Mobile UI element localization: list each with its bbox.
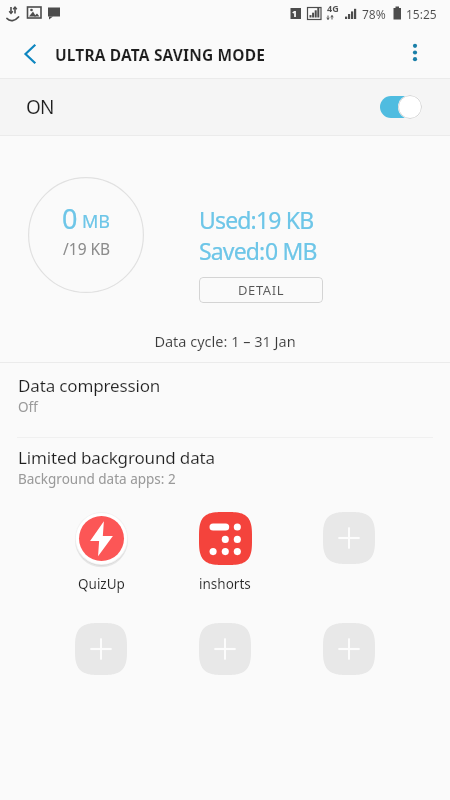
staticText: /19 KB: [63, 238, 111, 259]
staticText: MB: [82, 209, 111, 234]
staticText: 0 MB: [265, 235, 317, 266]
staticText: Off: [18, 398, 38, 416]
button[interactable]: DETAIL: [199, 277, 323, 303]
staticText: 4G: [327, 2, 339, 14]
button[interactable]: ON: [0, 79, 450, 135]
button[interactable]: Add app: [287, 623, 411, 703]
staticText: 15:25: [406, 6, 437, 22]
button[interactable]: More options: [398, 37, 432, 71]
staticText: Limited background data: [18, 446, 215, 469]
staticText: 78%: [362, 6, 386, 22]
button[interactable]: Add app: [163, 623, 287, 703]
staticText: 19 KB: [256, 204, 314, 235]
button[interactable]: Add app: [287, 512, 411, 592]
staticText: Data cycle: 1 – 31 Jan: [0, 331, 450, 351]
staticText: DETAIL: [238, 281, 285, 299]
button[interactable]: Navigate up: [12, 37, 46, 71]
button[interactable]: inshorts: [163, 512, 287, 593]
staticText: ON: [26, 94, 54, 120]
staticText: Used:: [199, 204, 256, 235]
staticText: 1: [292, 7, 298, 19]
staticText: inshorts: [199, 575, 251, 593]
staticText: ULTRA DATA SAVING MODE: [55, 44, 266, 65]
button[interactable]: QuizUp: [39, 512, 163, 593]
staticText: Data compression: [18, 374, 161, 397]
staticText: Background data apps: 2: [18, 470, 176, 488]
staticText: QuizUp: [78, 575, 125, 593]
button[interactable]: Add app: [39, 623, 163, 703]
button[interactable]: Data compression: [0, 363, 450, 437]
staticText: 0: [62, 200, 78, 237]
staticText: Saved:: [199, 235, 265, 266]
